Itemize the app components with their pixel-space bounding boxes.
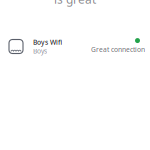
staticText: Great connection — [91, 45, 145, 54]
staticText: Boys Wifi — [33, 38, 62, 46]
staticText: Boys — [33, 46, 47, 55]
staticText: is great — [54, 0, 96, 7]
button[interactable]: Boys Wifi — [0, 36, 150, 56]
